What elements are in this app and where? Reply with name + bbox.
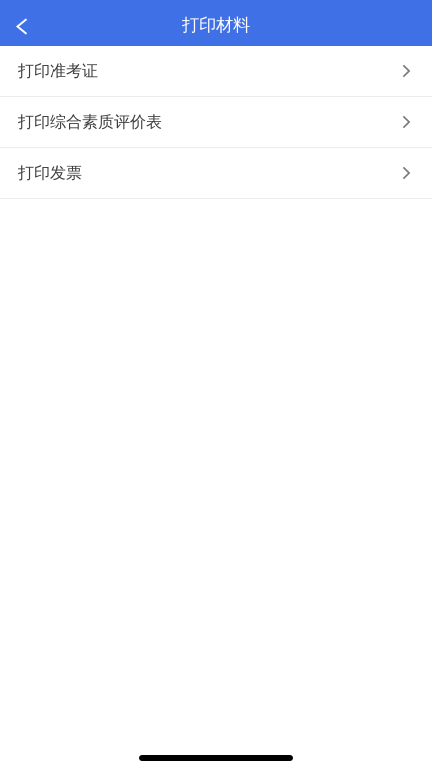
- button[interactable]: Back: [0, 0, 44, 46]
- staticText: 打印发票: [18, 163, 82, 183]
- button[interactable]: 打印发票: [0, 148, 432, 199]
- button[interactable]: 打印准考证: [0, 46, 432, 97]
- staticText: 打印综合素质评价表: [18, 112, 162, 132]
- button[interactable]: 打印综合素质评价表: [0, 97, 432, 148]
- staticText: 打印材料: [182, 14, 250, 36]
- staticText: 打印准考证: [18, 61, 98, 81]
